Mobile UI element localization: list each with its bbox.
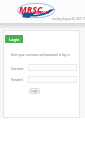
button[interactable] (28, 64, 77, 71)
button[interactable]: Login (5, 35, 23, 43)
staticText: Login (31, 89, 38, 93)
button[interactable] (28, 76, 77, 83)
staticText: Enter your username and password to log … (11, 53, 71, 57)
staticText: Password (11, 78, 23, 82)
other: MRSC Medical logo (17, 3, 55, 18)
button[interactable]: Login (29, 88, 40, 94)
staticText: Username (11, 67, 24, 71)
staticText: Login (9, 37, 20, 42)
staticText: Sunday, August 28, 2016 11:03 AM (52, 17, 85, 21)
staticText: MRSC (19, 4, 43, 16)
staticText: MEDICAL (35, 11, 50, 15)
